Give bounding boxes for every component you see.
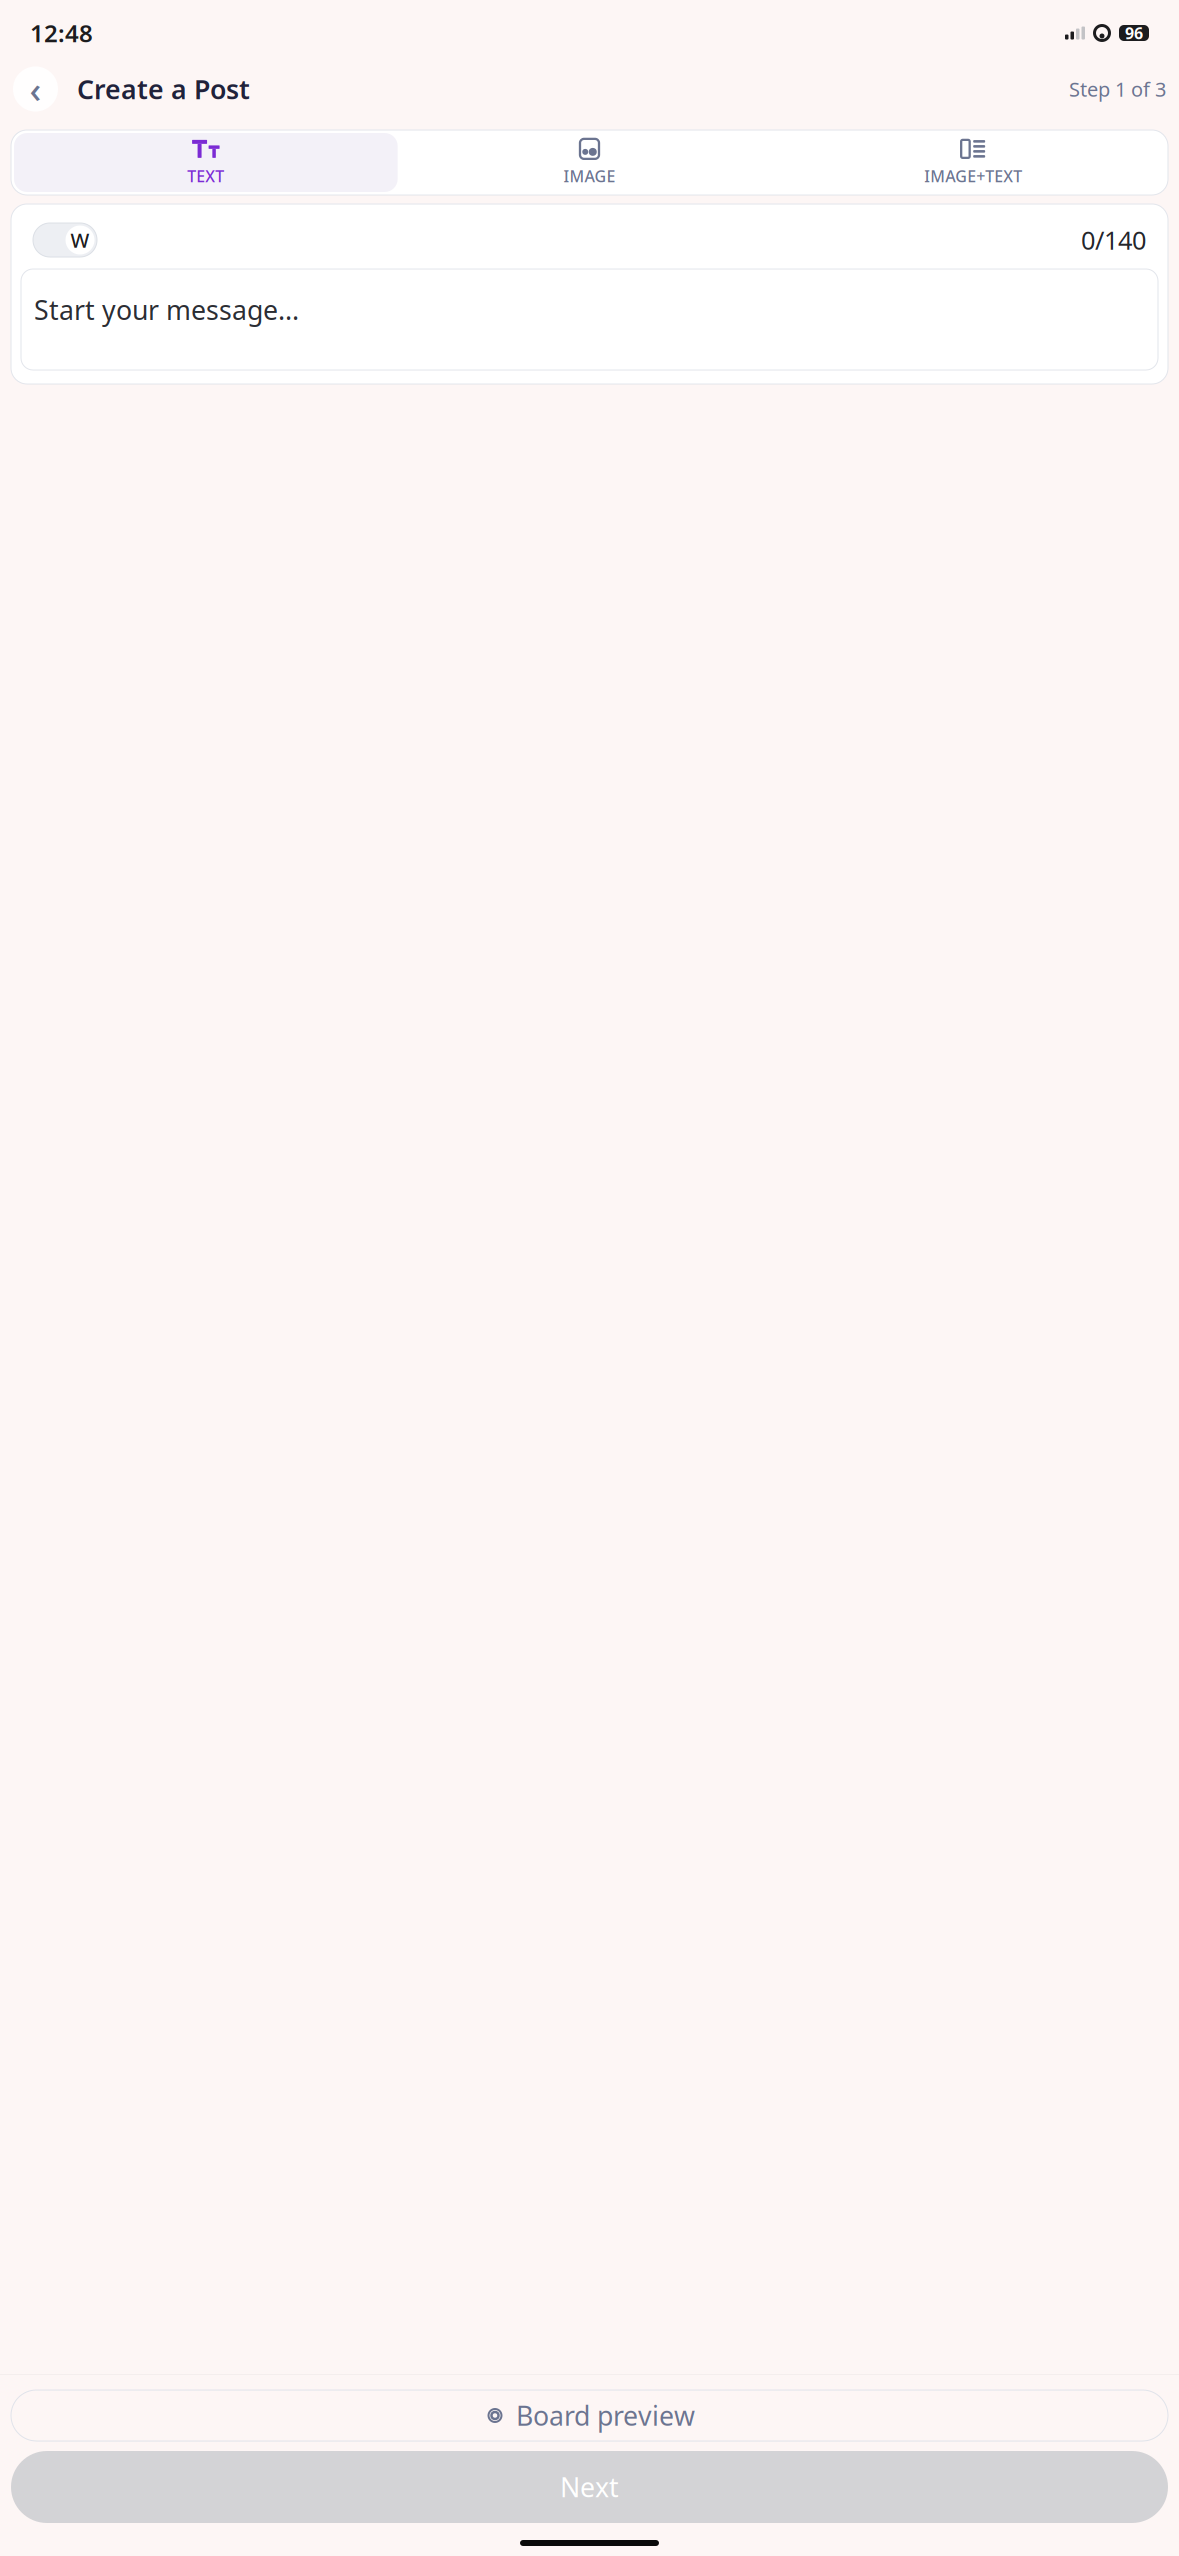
staticText: ‹ xyxy=(29,65,41,113)
staticText: Step 1 of 3 xyxy=(1069,76,1166,102)
button[interactable]: Channel toggle xyxy=(33,223,97,257)
button[interactable]: Start your message... xyxy=(21,269,1158,370)
button[interactable]: Back xyxy=(13,66,58,111)
staticText: IMAGE xyxy=(563,165,615,187)
staticText: TEXT xyxy=(187,165,224,187)
staticText: Create a Post xyxy=(77,71,250,107)
button[interactable]: Next xyxy=(11,2451,1168,2523)
staticText: W xyxy=(70,227,89,253)
staticText: 12:48 xyxy=(30,17,93,49)
button[interactable]: Board preview xyxy=(11,2390,1168,2441)
button[interactable]: IMAGE xyxy=(398,133,781,192)
button[interactable]: IMAGE+TEXT xyxy=(781,133,1165,192)
staticText: Start your message... xyxy=(34,292,299,327)
staticText: IMAGE+TEXT xyxy=(924,165,1022,187)
staticText: 0/140 xyxy=(1081,223,1146,257)
staticText: Board preview xyxy=(516,2398,695,2433)
staticText: Next xyxy=(560,2469,619,2505)
button[interactable]: TEXT xyxy=(14,133,398,192)
staticText: 96 xyxy=(1125,22,1143,44)
